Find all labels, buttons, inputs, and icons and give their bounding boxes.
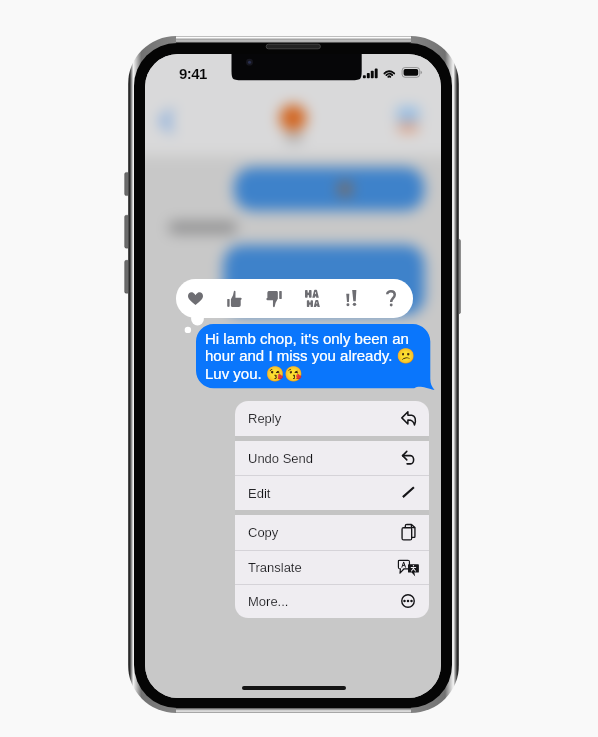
staticText: 9:41 xyxy=(179,65,207,82)
staticText: Edit xyxy=(248,486,271,501)
button[interactable]: Edit xyxy=(235,476,429,510)
button[interactable]: Love xyxy=(176,279,215,318)
staticText: Copy xyxy=(248,525,279,540)
button[interactable]: Undo Send xyxy=(235,441,429,475)
staticText: Hi lamb chop, it's only been an hour and… xyxy=(205,330,415,383)
button[interactable]: Reply xyxy=(235,401,429,436)
button[interactable]: Haha xyxy=(293,279,332,318)
button[interactable]: Translate xyxy=(235,551,429,584)
staticText: Translate xyxy=(248,560,302,575)
staticText: More... xyxy=(248,594,289,609)
button[interactable]: Like xyxy=(215,279,254,318)
staticText: Reply xyxy=(248,411,282,426)
staticText: Undo Send xyxy=(248,451,314,466)
button[interactable]: More... xyxy=(235,585,429,618)
button[interactable]: Emphasize xyxy=(332,279,371,318)
button[interactable]: Question xyxy=(371,279,410,318)
button[interactable]: Dislike xyxy=(254,279,293,318)
button[interactable]: Copy xyxy=(235,515,429,550)
